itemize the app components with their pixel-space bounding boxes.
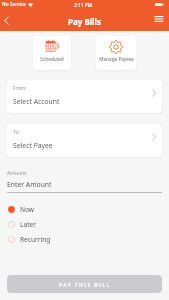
button[interactable]: Recurring (8, 232, 169, 247)
staticText: No Service (2, 1, 26, 8)
button[interactable]: Back (0, 10, 16, 30)
button[interactable]: Now (8, 202, 169, 217)
staticText: PAY THIS BILL (59, 281, 111, 288)
button[interactable]: Scheduled (33, 36, 71, 70)
staticText: Recurring (20, 235, 51, 244)
button[interactable]: To: (7, 124, 162, 157)
button[interactable]: From: (7, 80, 162, 113)
button[interactable]: PAY THIS BILL (7, 275, 162, 293)
staticText: Select Payee (13, 141, 53, 150)
staticText: 2:11 PM (74, 2, 93, 9)
staticText: Now (20, 205, 35, 214)
staticText: Manage Payees (99, 56, 134, 62)
staticText: Select Account (13, 97, 60, 106)
staticText: To: (13, 129, 20, 136)
staticText: Pay Bills (68, 16, 101, 27)
staticText: Enter Amount (7, 180, 52, 189)
staticText: Amount: (7, 170, 28, 177)
staticText: Later (20, 220, 36, 229)
staticText: Scheduled (40, 56, 64, 63)
button[interactable]: Manage Payees (96, 36, 136, 70)
staticText: From: (13, 85, 27, 92)
button[interactable]: Menu (149, 9, 169, 29)
button[interactable]: Later (8, 217, 169, 232)
